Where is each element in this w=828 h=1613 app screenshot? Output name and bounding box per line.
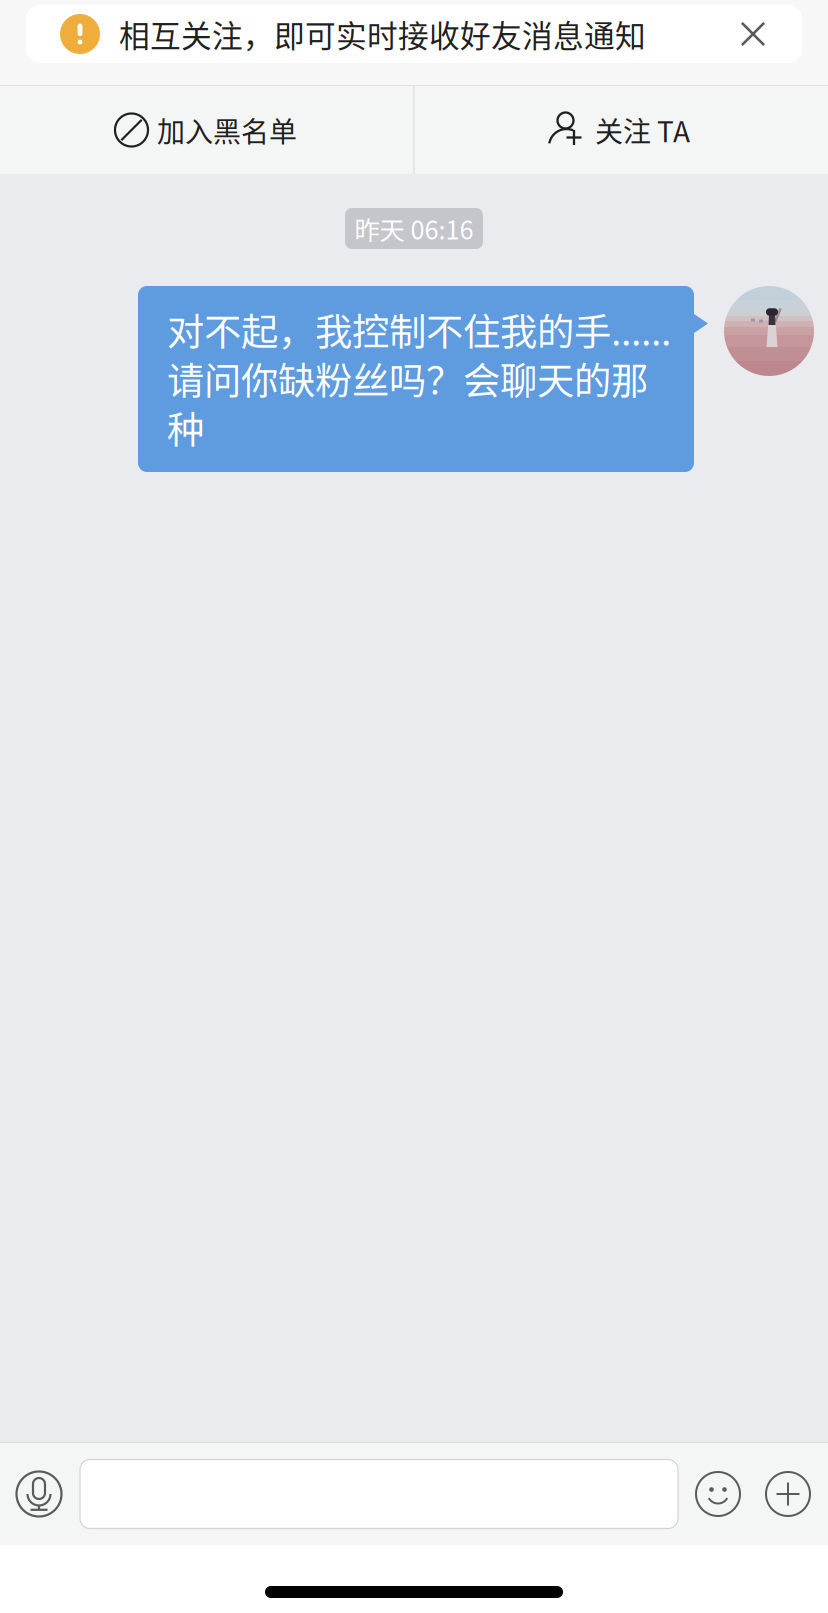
staticText: 种 [167, 400, 204, 455]
staticText: 相互关注，即可实时接收好友消息通知 [119, 12, 646, 56]
button[interactable]: 加入黑名单 [0, 86, 412, 174]
staticText: 对不起，我控制不住我的手...... [167, 302, 671, 357]
button[interactable]: 语音输入 [8, 1443, 70, 1545]
button[interactable]: 头像 [724, 286, 814, 376]
staticText: 关注 TA [595, 110, 690, 150]
button[interactable]: 更多 [766, 1443, 810, 1545]
button[interactable]: 表情 [696, 1443, 740, 1545]
button[interactable]: 对不起，我控制不住我的手...... [138, 286, 694, 472]
staticText: 加入黑名单 [157, 110, 297, 150]
button[interactable]: 关注 TA [412, 86, 828, 174]
button[interactable]: 关闭 [718, 5, 788, 63]
staticText: 昨天 06:16 [354, 210, 473, 247]
staticText: 请问你缺粉丝吗？会聊天的那 [167, 351, 648, 406]
